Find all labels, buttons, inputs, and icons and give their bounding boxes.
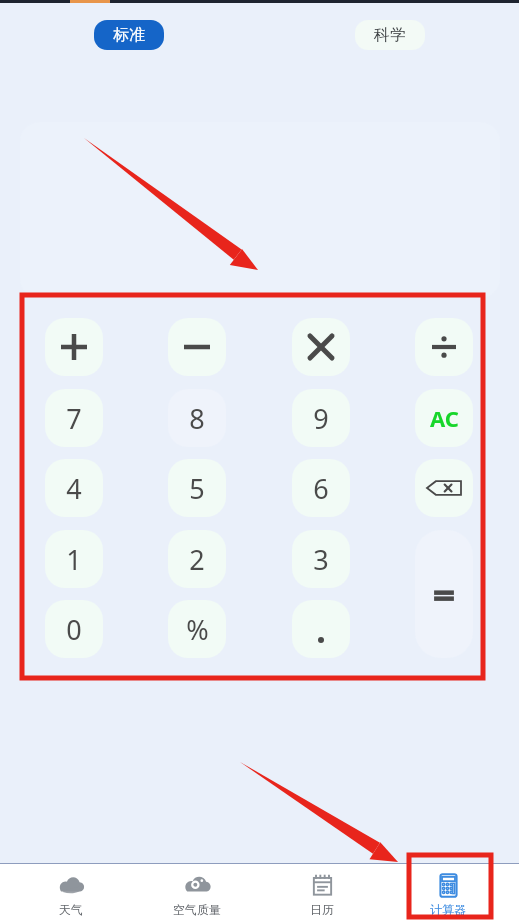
button[interactable]: 9 bbox=[292, 389, 350, 447]
button[interactable]: 7 bbox=[45, 389, 103, 447]
staticText: 9 bbox=[313, 400, 329, 437]
staticText: 空气质量 bbox=[173, 902, 221, 917]
staticText: 6 bbox=[313, 470, 329, 507]
button[interactable]: 空气质量 bbox=[142, 868, 252, 917]
staticText: 标准 bbox=[113, 25, 145, 45]
button[interactable]: AC bbox=[415, 389, 473, 447]
button[interactable]: 6 bbox=[292, 459, 350, 517]
button[interactable] bbox=[168, 318, 226, 376]
staticText: 0 bbox=[66, 611, 82, 648]
button[interactable]: 0 bbox=[45, 600, 103, 658]
button[interactable]: 天气 bbox=[16, 868, 126, 917]
button[interactable]: 8 bbox=[168, 389, 226, 447]
button[interactable]: 5 bbox=[168, 459, 226, 517]
staticText: 7 bbox=[66, 400, 82, 437]
staticText: 天气 bbox=[59, 902, 83, 917]
button[interactable]: 3 bbox=[292, 530, 350, 588]
staticText: % bbox=[186, 611, 209, 648]
button[interactable] bbox=[292, 600, 350, 658]
button[interactable]: 日历 bbox=[267, 868, 377, 917]
button[interactable] bbox=[415, 318, 473, 376]
staticText: 日历 bbox=[310, 902, 334, 917]
staticText: 2 bbox=[189, 541, 205, 578]
staticText: AC bbox=[430, 403, 459, 433]
button[interactable]: 科学 bbox=[355, 20, 425, 50]
button[interactable]: Backspace bbox=[415, 459, 473, 517]
staticText: 计算器 bbox=[430, 902, 466, 917]
button[interactable]: 标准 bbox=[94, 20, 164, 50]
staticText: 3 bbox=[313, 541, 329, 578]
button[interactable]: % bbox=[168, 600, 226, 658]
staticText: 5 bbox=[189, 470, 205, 507]
button[interactable] bbox=[45, 318, 103, 376]
button[interactable]: 2 bbox=[168, 530, 226, 588]
button[interactable] bbox=[292, 318, 350, 376]
button[interactable]: 4 bbox=[45, 459, 103, 517]
button[interactable]: 计算器 bbox=[393, 868, 503, 917]
button[interactable] bbox=[20, 122, 500, 298]
staticText: 科学 bbox=[374, 25, 406, 45]
staticText: 4 bbox=[66, 470, 82, 507]
button[interactable]: 1 bbox=[45, 530, 103, 588]
button[interactable]: Equals bbox=[415, 530, 473, 658]
staticText: 1 bbox=[66, 541, 82, 578]
staticText: 8 bbox=[189, 400, 205, 437]
